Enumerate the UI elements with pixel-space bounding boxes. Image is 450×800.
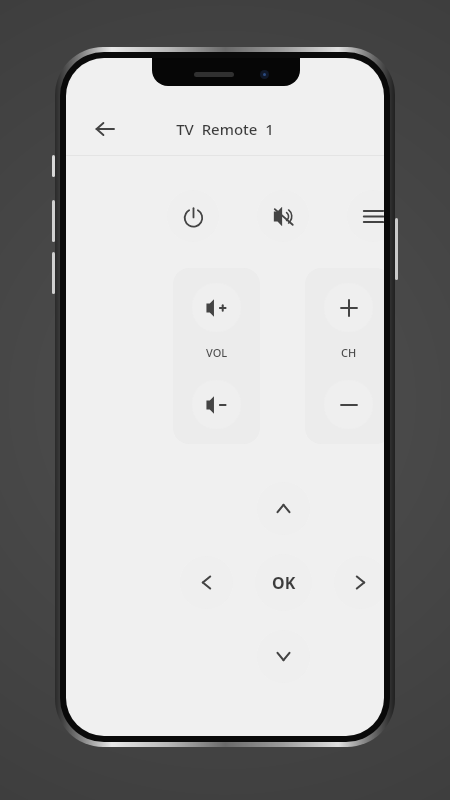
button[interactable]: Right [334, 556, 384, 609]
button[interactable]: Channel down [324, 380, 373, 429]
button[interactable]: OK [255, 554, 312, 611]
staticText: CH [341, 345, 357, 360]
button[interactable]: Left [180, 556, 233, 609]
button[interactable]: Down [257, 630, 310, 683]
button[interactable]: Volume down [192, 380, 241, 429]
button[interactable]: Back [88, 112, 122, 146]
staticText: OK [272, 572, 296, 594]
button[interactable]: Mute [257, 190, 309, 242]
button[interactable]: Channel up [324, 283, 373, 332]
button[interactable]: Menu [347, 190, 384, 242]
button[interactable]: Volume up [192, 283, 241, 332]
staticText: VOL [206, 345, 228, 360]
button[interactable]: Up [257, 482, 310, 535]
staticText: TV Remote 1 [176, 119, 274, 139]
button[interactable]: Power [167, 190, 219, 242]
